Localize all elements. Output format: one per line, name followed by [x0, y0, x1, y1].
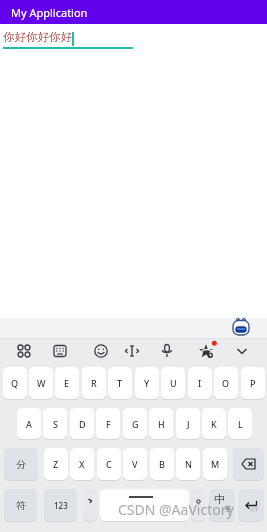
staticText: 英: [225, 505, 232, 513]
staticText: My Application: [11, 5, 88, 20]
button[interactable]: [52, 343, 68, 359]
staticText: V: [132, 458, 138, 470]
button[interactable]: U: [161, 367, 185, 399]
staticText: G: [132, 418, 139, 430]
button[interactable]: H: [149, 408, 173, 439]
staticText: C: [106, 458, 112, 470]
button[interactable]: [159, 343, 175, 359]
staticText: 分: [16, 458, 26, 471]
button[interactable]: X: [70, 448, 94, 480]
button[interactable]: 123: [44, 489, 77, 521]
button[interactable]: F: [96, 408, 120, 439]
staticText: P: [250, 377, 256, 389]
button[interactable]: P: [241, 367, 265, 399]
button[interactable]: O: [214, 367, 238, 399]
button[interactable]: L: [228, 408, 252, 439]
staticText: S: [53, 418, 58, 430]
staticText: M: [211, 458, 220, 470]
button[interactable]: W: [29, 367, 53, 399]
button[interactable]: J: [176, 408, 200, 439]
staticText: A: [26, 418, 32, 430]
button[interactable]: 中: [209, 489, 235, 521]
button[interactable]: S: [43, 408, 67, 439]
staticText: F: [106, 418, 111, 430]
staticText: I: [198, 377, 202, 389]
button[interactable]: Z: [44, 448, 68, 480]
button[interactable]: N: [176, 448, 200, 480]
staticText: U: [170, 377, 177, 389]
button[interactable]: V: [123, 448, 147, 480]
button[interactable]: [234, 344, 250, 358]
button[interactable]: A: [17, 408, 41, 439]
button[interactable]: [238, 489, 264, 521]
button[interactable]: [100, 489, 189, 521]
staticText: J: [187, 418, 190, 430]
button[interactable]: [197, 339, 217, 359]
button[interactable]: [93, 343, 109, 359]
staticText: 符: [16, 499, 26, 512]
button[interactable]: I: [188, 367, 212, 399]
staticText: R: [91, 377, 97, 389]
staticText: B: [159, 458, 165, 470]
button[interactable]: [0, 28, 134, 52]
staticText: CSDN @AaVictory: [118, 500, 234, 519]
button[interactable]: 分: [4, 448, 38, 480]
staticText: X: [79, 458, 85, 470]
button[interactable]: My Application: [0, 0, 267, 24]
button[interactable]: Q: [3, 367, 27, 399]
button[interactable]: T: [108, 367, 132, 399]
button[interactable]: [231, 317, 251, 336]
button[interactable]: [191, 489, 205, 521]
staticText: H: [158, 418, 165, 430]
button[interactable]: [16, 343, 32, 359]
button[interactable]: M: [203, 448, 227, 480]
staticText: Y: [144, 377, 150, 389]
staticText: N: [185, 458, 192, 470]
staticText: W: [37, 377, 46, 389]
button[interactable]: D: [70, 408, 94, 439]
staticText: 你好你好你好: [3, 30, 72, 44]
button[interactable]: G: [123, 408, 147, 439]
button[interactable]: C: [97, 448, 121, 480]
staticText: D: [79, 418, 86, 430]
button[interactable]: [233, 448, 264, 480]
staticText: E: [64, 377, 70, 389]
staticText: 知乎: [249, 506, 259, 512]
button[interactable]: [83, 489, 97, 521]
staticText: Z: [53, 458, 59, 470]
staticText: T: [117, 377, 123, 389]
button[interactable]: [124, 343, 140, 359]
button[interactable]: E: [55, 367, 79, 399]
staticText: K: [211, 418, 217, 430]
staticText: O: [222, 377, 230, 389]
button[interactable]: 符: [4, 489, 37, 521]
staticText: 123: [54, 500, 68, 511]
button[interactable]: K: [202, 408, 226, 439]
staticText: L: [238, 418, 243, 430]
staticText: Q: [11, 377, 19, 389]
button[interactable]: R: [82, 367, 106, 399]
button[interactable]: B: [150, 448, 174, 480]
staticText: 中: [214, 492, 225, 506]
button[interactable]: Y: [135, 367, 159, 399]
